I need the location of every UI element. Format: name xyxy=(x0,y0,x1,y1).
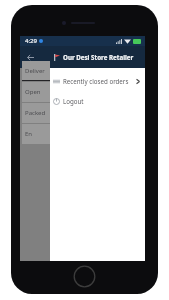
staticText: Recently closed orders xyxy=(63,77,129,85)
button[interactable]: Open navigation drawer xyxy=(22,49,38,65)
staticText: Logout xyxy=(63,97,84,105)
staticText: Delivery xyxy=(25,67,47,75)
button[interactable]: Open xyxy=(22,82,50,102)
button[interactable]: En Route xyxy=(22,124,50,144)
button[interactable]: Packed xyxy=(22,103,50,123)
button[interactable]: Logout xyxy=(50,91,145,111)
button[interactable]: Recently closed orders xyxy=(50,71,145,91)
staticText: 4:29 xyxy=(25,37,37,45)
staticText: Packed xyxy=(25,109,46,117)
staticText: Open xyxy=(25,88,41,96)
staticText: En Route xyxy=(25,130,47,138)
staticText: Our Desi Store Retailer xyxy=(63,53,134,61)
button[interactable]: Delivery xyxy=(22,61,50,81)
